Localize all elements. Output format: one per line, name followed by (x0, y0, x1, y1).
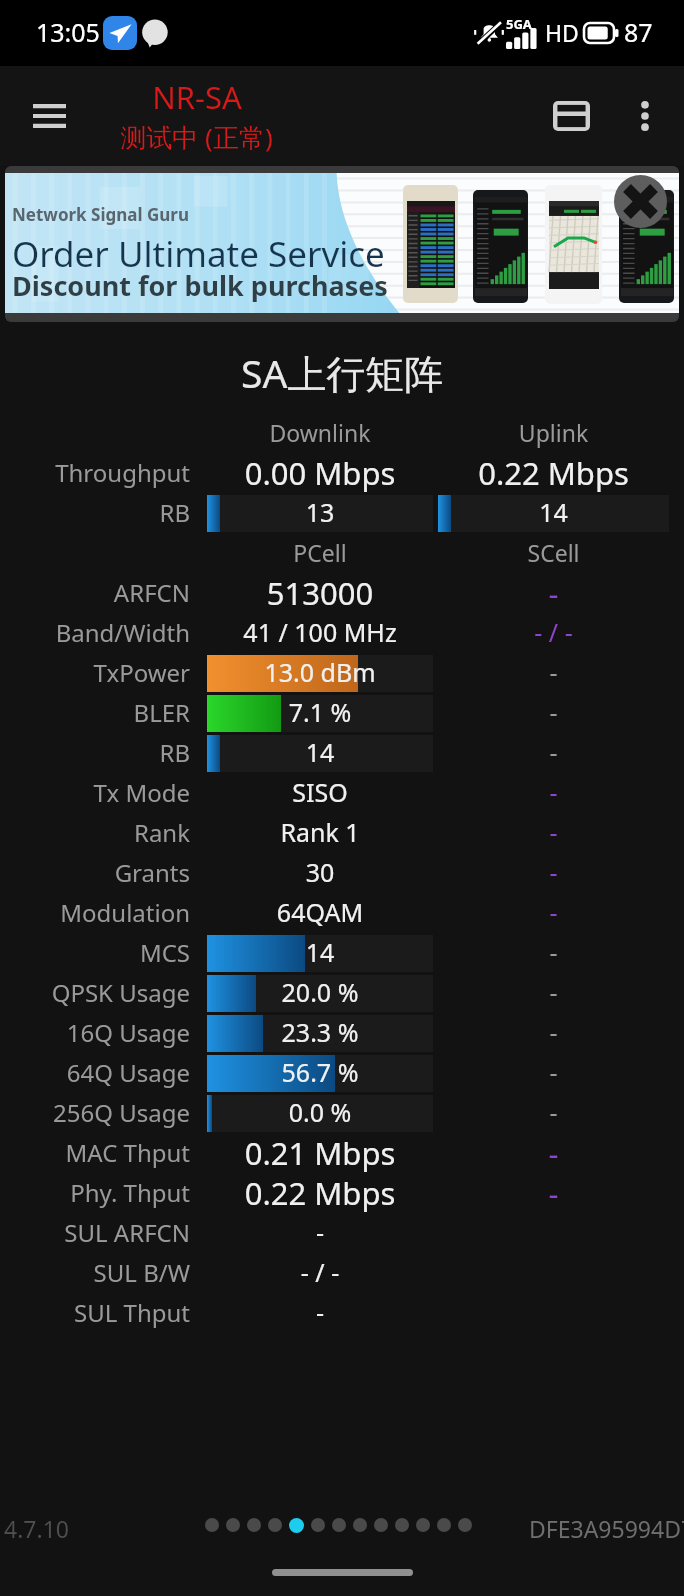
staticText: PCell (207, 537, 433, 568)
staticText: - / - (438, 615, 669, 649)
staticText: RB (0, 736, 190, 769)
staticText: - (207, 1295, 433, 1329)
staticText: SUL Thput (0, 1296, 190, 1329)
button[interactable]: Network Signal Guru (5, 166, 679, 322)
staticText: DFE3A95994D7 (529, 1513, 684, 1544)
staticText: 256Q Usage (0, 1096, 190, 1129)
button[interactable] (374, 1518, 388, 1532)
button[interactable] (289, 1518, 304, 1533)
staticText: ARFCN (0, 576, 190, 609)
staticText: 7.1 % (207, 695, 433, 729)
staticText: Grants (0, 856, 190, 889)
staticText: - (438, 655, 669, 689)
staticText: - (207, 1215, 433, 1249)
staticText: 41 / 100 MHz (207, 615, 433, 649)
staticText: QPSK Usage (0, 976, 190, 1009)
staticText: 0.0 % (207, 1095, 433, 1129)
button[interactable]: Menu (16, 83, 82, 149)
staticText: 测试中 (正常) (120, 119, 273, 155)
staticText: 14 (438, 495, 669, 529)
staticText: - (438, 775, 669, 809)
staticText: 20.0 % (207, 975, 433, 1009)
staticText: 14 (207, 735, 433, 769)
staticText: 0.22 Mbps (438, 452, 669, 492)
staticText: Phy. Thput (0, 1176, 190, 1209)
staticText: - (438, 1055, 669, 1089)
staticText: Downlink (207, 417, 433, 448)
staticText: TxPower (0, 656, 190, 689)
staticText: SISO (207, 775, 433, 809)
staticText: 4.7.10 (4, 1513, 69, 1544)
button[interactable] (247, 1518, 261, 1532)
staticText: 5GA (506, 15, 532, 33)
staticText: 64Q Usage (0, 1056, 190, 1089)
staticText: - (438, 895, 669, 929)
staticText: - (438, 695, 669, 729)
button[interactable] (416, 1518, 430, 1532)
staticText: 30 (207, 855, 433, 889)
staticText: 23.3 % (207, 1015, 433, 1049)
button[interactable] (311, 1518, 325, 1532)
staticText: 87 (624, 15, 653, 49)
staticText: Band/Width (0, 616, 190, 649)
staticText: 56.7 % (207, 1055, 433, 1089)
staticText: 0.21 Mbps (207, 1132, 433, 1172)
button[interactable] (205, 1518, 219, 1532)
staticText: SUL B/W (0, 1256, 190, 1289)
staticText: - (438, 975, 669, 1009)
staticText: 0.00 Mbps (207, 452, 433, 492)
button[interactable] (437, 1518, 451, 1532)
button[interactable] (353, 1518, 367, 1532)
button[interactable] (395, 1518, 409, 1532)
staticText: - (438, 735, 669, 769)
staticText: Discount for bulk purchases (12, 267, 388, 304)
button[interactable] (226, 1518, 240, 1532)
staticText: Throughput (0, 456, 190, 489)
staticText: - (438, 815, 669, 849)
staticText: 14 (207, 935, 433, 969)
staticText: 16Q Usage (0, 1016, 190, 1049)
staticText: - (438, 1095, 669, 1129)
button[interactable] (458, 1518, 472, 1532)
staticText: Order Ultimate Service (12, 230, 385, 278)
staticText: NR-SA (152, 76, 242, 118)
button[interactable]: Layout (537, 82, 605, 150)
staticText: HD (545, 17, 579, 48)
staticText: Tx Mode (0, 776, 190, 809)
staticText: - (438, 1015, 669, 1049)
staticText: Rank 1 (207, 815, 433, 849)
staticText: MCS (0, 936, 190, 969)
staticText: SA上行矩阵 (241, 346, 444, 394)
staticText: Rank (0, 816, 190, 849)
staticText: Uplink (438, 417, 669, 448)
staticText: - (438, 1172, 669, 1212)
staticText: MAC Thput (0, 1136, 190, 1169)
staticText: 0.22 Mbps (207, 1172, 433, 1212)
staticText: SCell (438, 537, 669, 568)
staticText: BLER (0, 696, 190, 729)
staticText: 513000 (207, 572, 433, 612)
staticText: Modulation (0, 896, 190, 929)
staticText: - (438, 1132, 669, 1172)
staticText: Network Signal Guru (12, 203, 190, 226)
staticText: - / - (207, 1255, 433, 1289)
button[interactable]: Close ad (614, 175, 667, 228)
staticText: 13.0 dBm (207, 655, 433, 689)
staticText: 64QAM (207, 895, 433, 929)
button[interactable] (268, 1518, 282, 1532)
button[interactable]: More options (613, 84, 677, 148)
staticText: 13:05 (36, 15, 100, 49)
staticText: SUL ARFCN (0, 1216, 190, 1249)
staticText: - (438, 572, 669, 612)
staticText: RB (0, 496, 190, 529)
button[interactable] (332, 1518, 346, 1532)
staticText: 13 (207, 495, 433, 529)
staticText: - (438, 935, 669, 969)
staticText: - (438, 855, 669, 889)
